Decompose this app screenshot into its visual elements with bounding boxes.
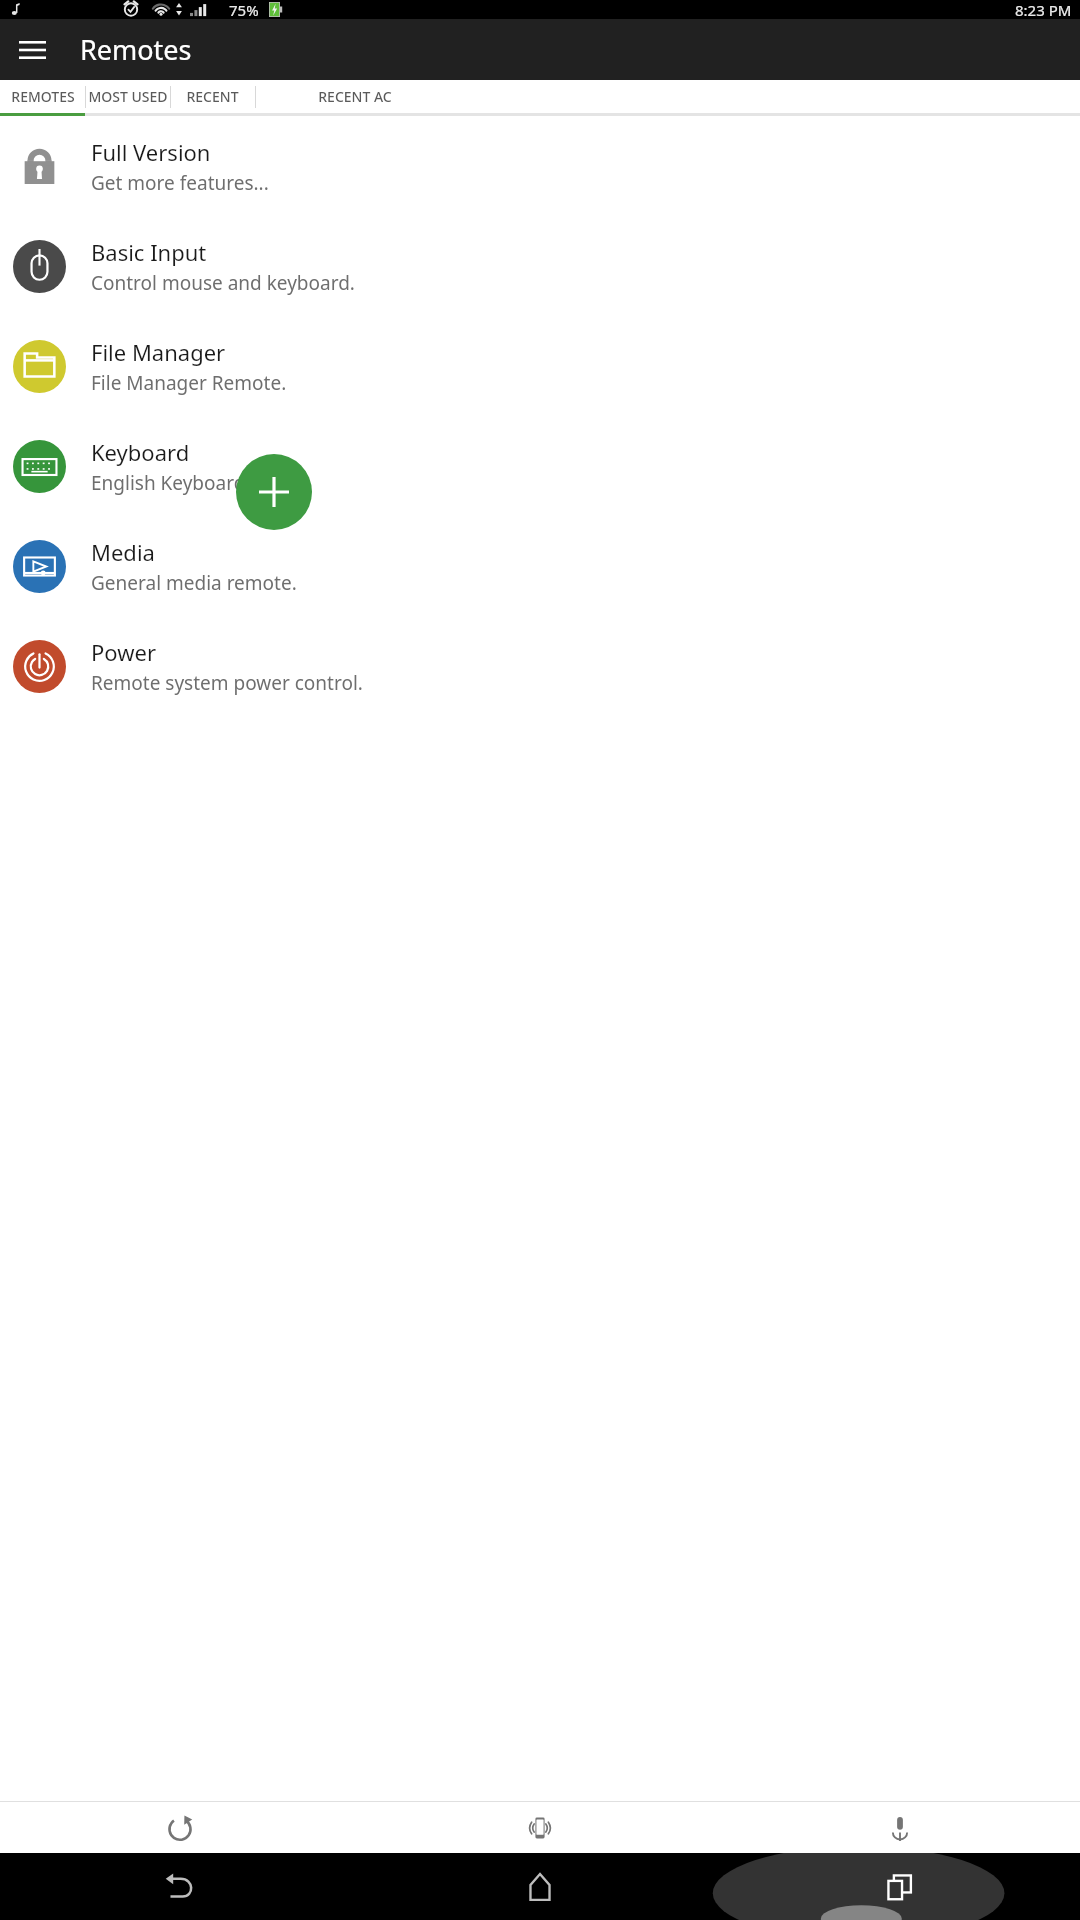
button[interactable]: Media: [0, 516, 1080, 616]
staticText: General media remote.: [91, 570, 297, 596]
button[interactable]: RECENT AC: [255, 80, 455, 113]
staticText: File Manager Remote.: [91, 370, 287, 396]
button[interactable]: Basic Input: [0, 216, 1080, 316]
staticText: Control mouse and keyboard.: [91, 270, 355, 296]
staticText: Remote system power control.: [91, 670, 363, 696]
button[interactable]: Add remote: [236, 454, 312, 530]
staticText: Basic Input: [91, 237, 207, 267]
staticText: English Keyboard: [91, 470, 246, 496]
button[interactable]: Find device: [360, 1802, 720, 1853]
button[interactable]: Full Version: [0, 116, 1080, 216]
button[interactable]: REMOTES: [0, 80, 85, 113]
button[interactable]: Refresh: [0, 1802, 360, 1853]
button[interactable]: File Manager: [0, 316, 1080, 416]
staticText: Remotes: [80, 31, 192, 68]
staticText: RECENT: [186, 87, 239, 106]
button[interactable]: Voice: [720, 1802, 1080, 1853]
staticText: MOST USED: [88, 87, 168, 106]
button[interactable]: Keyboard: [0, 416, 1080, 516]
staticText: Power: [91, 637, 156, 667]
button[interactable]: RECENT: [170, 80, 255, 113]
staticText: Get more features...: [91, 170, 269, 196]
button[interactable]: Power: [0, 616, 1080, 716]
button[interactable]: Recent apps: [720, 1853, 1080, 1920]
staticText: REMOTES: [11, 87, 75, 106]
button[interactable]: Home: [360, 1853, 720, 1920]
staticText: File Manager: [91, 337, 226, 367]
button[interactable]: Open navigation drawer: [8, 26, 56, 74]
staticText: Full Version: [91, 137, 211, 167]
staticText: Keyboard: [91, 437, 190, 467]
staticText: Media: [91, 537, 155, 567]
staticText: 8:23 PM: [1015, 0, 1072, 19]
staticText: RECENT AC: [318, 87, 392, 106]
staticText: 75%: [229, 0, 259, 19]
button[interactable]: Back: [0, 1853, 360, 1920]
button[interactable]: MOST USED: [85, 80, 170, 113]
